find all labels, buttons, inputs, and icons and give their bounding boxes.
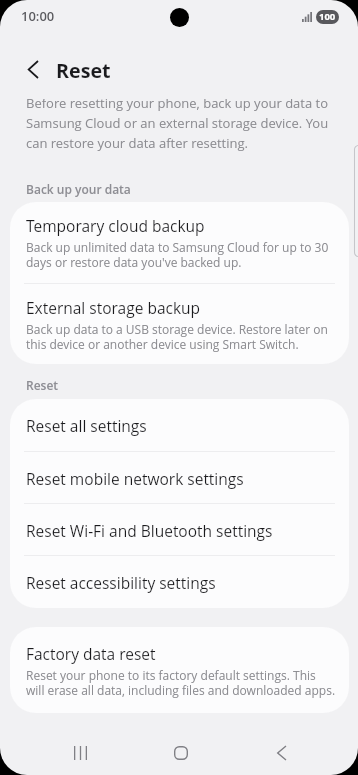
button[interactable]: Reset accessibility settings [10,556,349,608]
staticText: Back up your data [26,184,131,197]
staticText: 10:00 [21,10,55,24]
button[interactable]: Back [261,733,301,775]
staticText: Back up data to a USB storage device. Re… [26,322,336,352]
staticText: Reset Wi-Fi and Bluetooth settings [26,524,273,541]
staticText: Temporary cloud backup [26,219,205,236]
staticText: Reset accessibility settings [26,576,216,593]
staticText: Reset all settings [26,419,147,436]
button[interactable]: Temporary cloud backup [10,202,349,283]
staticText: Reset [56,62,111,83]
button[interactable]: Factory data reset [10,627,349,713]
button[interactable]: Navigate up [21,57,45,81]
staticText: Reset mobile network settings [26,472,244,489]
staticText: Back up unlimited data to Samsung Cloud … [26,240,336,270]
button[interactable]: Home [160,733,200,775]
staticText: External storage backup [26,301,201,318]
staticText: 100 [319,12,336,22]
button[interactable]: Recent apps [60,733,100,775]
staticText: Reset your phone to its factory default … [26,668,336,698]
button[interactable]: External storage backup [10,284,349,364]
staticText: Factory data reset [26,647,156,664]
button[interactable]: Reset Wi-Fi and Bluetooth settings [10,504,349,555]
button[interactable]: Reset all settings [10,399,349,451]
staticText: Reset [26,380,59,393]
staticText: Before resetting your phone, back up you… [26,99,332,152]
button[interactable]: Reset mobile network settings [10,452,349,503]
